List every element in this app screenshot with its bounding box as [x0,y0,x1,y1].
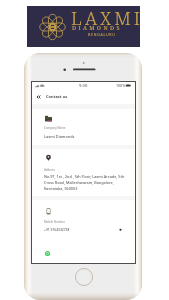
button[interactable]: Call [118,227,123,232]
button[interactable]: WhatsApp [45,251,50,256]
button[interactable]: Back [32,89,135,104]
staticText: 100% [116,83,126,88]
staticText: 9:30 [79,83,88,89]
staticText: Laxmi Diamonds [44,134,75,139]
button[interactable]: LAXMI [27,6,140,47]
staticText: Company Name [44,126,66,130]
staticText: No.97, 1st , 2nd , 5th Floor, Laxmi Arca… [44,174,128,191]
button[interactable]: Address [32,149,135,196]
button[interactable]: Mobile Number [32,200,135,263]
staticText: DIAMONDS [72,24,122,31]
staticText: Mobile Number [44,220,65,224]
staticText: +91 9164332738 [44,227,70,231]
button[interactable]: Back [36,94,42,100]
staticText: BENGALURU [88,32,116,37]
staticText: Address [44,168,55,172]
staticText: Contact us [46,94,68,99]
button[interactable]: Company Name [32,109,135,145]
staticText: LAXMI [71,6,144,31]
